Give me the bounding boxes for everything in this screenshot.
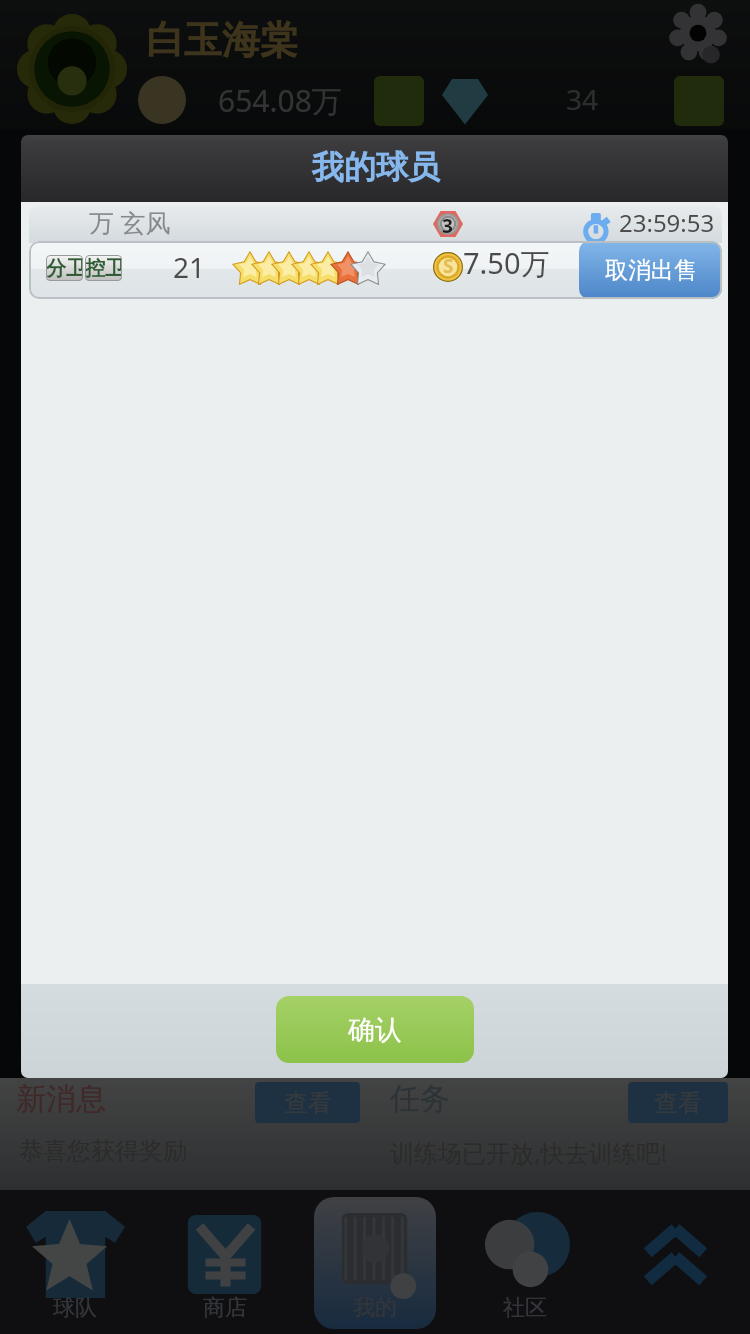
staticText: S <box>443 253 454 279</box>
button[interactable]: Scroll up <box>600 1190 750 1334</box>
staticText: 我的 <box>353 1294 397 1322</box>
staticText: 任务 <box>390 1080 450 1118</box>
button[interactable]: Profile <box>18 15 126 123</box>
staticText: 白玉海棠 <box>146 16 298 64</box>
button[interactable]: 查看 <box>255 1082 360 1123</box>
staticText: 球队 <box>53 1294 97 1322</box>
staticText: 确认 <box>348 1013 402 1047</box>
button[interactable]: 球队 <box>0 1190 150 1334</box>
staticText: 社区 <box>503 1294 547 1322</box>
staticText: 7.50万 <box>463 243 550 283</box>
button[interactable]: Settings <box>674 9 724 64</box>
staticText: 查看 <box>284 1088 332 1118</box>
staticText: 商店 <box>203 1294 247 1322</box>
button[interactable]: 取消出售 <box>579 241 722 299</box>
staticText: 21 <box>173 248 206 286</box>
button[interactable]: 社区 <box>450 1190 600 1334</box>
button[interactable]: 商店 <box>150 1190 300 1334</box>
staticText: 万 玄风 <box>89 206 171 239</box>
staticText: 23:59:53 <box>619 206 715 239</box>
staticText: 控卫 <box>85 256 122 281</box>
staticText: 新消息 <box>16 1080 106 1118</box>
staticText: 34 <box>566 80 599 118</box>
staticText: 我的球员 <box>312 147 440 187</box>
button[interactable]: 确认 <box>276 996 474 1063</box>
staticText: 654.08万 <box>218 80 342 121</box>
staticText: 取消出售 <box>605 256 697 285</box>
staticText: 分卫 <box>46 256 83 281</box>
staticText: 查看 <box>654 1088 702 1118</box>
button[interactable]: 我的 <box>300 1190 450 1334</box>
staticText: 恭喜您获得奖励 <box>19 1136 187 1166</box>
staticText: 训练场已开放,快去训练吧! <box>390 1136 667 1169</box>
staticText: 3 <box>442 213 453 239</box>
button[interactable]: 查看 <box>628 1082 728 1123</box>
